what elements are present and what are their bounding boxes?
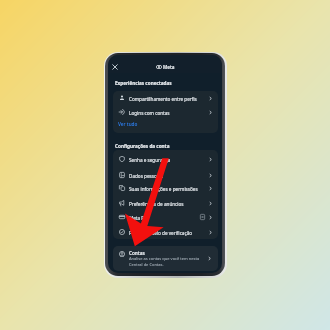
staticText: Meta Pay [129, 215, 150, 221]
staticText: Ver tudo [118, 121, 138, 127]
button[interactable]: Preferências de anúncios [113, 196, 218, 210]
staticText: Senha e segurança [129, 157, 171, 163]
staticText: Logins com contas [129, 110, 170, 116]
button[interactable]: Ver tudo [113, 117, 218, 132]
staticText: Preferências de anúncios [129, 201, 184, 207]
button[interactable]: Logins com contas [113, 105, 218, 119]
staticText: Configurações da conta [115, 143, 170, 149]
button[interactable]: Meta Pay [113, 210, 218, 224]
staticText: Meta [163, 64, 175, 70]
staticText: Compartilhamento entre perfis [129, 96, 197, 102]
button[interactable]: Pedido de selo de verificação [113, 225, 218, 239]
button[interactable]: Compartilhamento entre perfis [113, 91, 218, 105]
button[interactable]: Fechar [111, 63, 119, 71]
staticText: Contas [129, 250, 145, 256]
button[interactable]: Senha e segurança [113, 152, 218, 166]
staticText: Suas informações e permissões [129, 186, 198, 192]
button[interactable]: Suas informações e permissões [113, 181, 218, 195]
staticText: Analise as contas que você tem nesta Cen… [129, 256, 202, 268]
staticText: Experiências conectadas [115, 80, 172, 86]
button[interactable]: Dados pessoais [113, 168, 218, 182]
staticText: Pedido de selo de verificação [129, 230, 193, 236]
staticText: Dados pessoais [129, 173, 163, 179]
button[interactable]: Contas [113, 246, 218, 271]
